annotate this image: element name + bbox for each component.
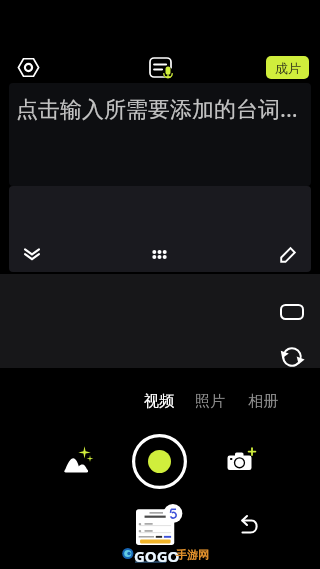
staticText: 成片 bbox=[275, 60, 301, 76]
staticText: GOGO bbox=[134, 546, 180, 566]
button[interactable]: Beauty filter bbox=[60, 443, 96, 479]
staticText: 点击输入所需要添加的台词... bbox=[16, 93, 298, 123]
button[interactable]: Add photo bbox=[224, 444, 260, 480]
button[interactable]: Gallery preview bbox=[135, 507, 181, 545]
button[interactable]: 成片 bbox=[266, 56, 309, 79]
button[interactable]: Switch camera bbox=[278, 343, 306, 371]
button[interactable]: 相册 bbox=[238, 389, 288, 413]
button[interactable]: Collapse bbox=[17, 240, 46, 269]
button[interactable] bbox=[9, 83, 311, 186]
button[interactable]: Edit script bbox=[273, 240, 302, 269]
button[interactable]: Teleprompter script bbox=[147, 54, 174, 81]
button[interactable]: Settings bbox=[13, 52, 43, 82]
staticText: 相册 bbox=[248, 392, 278, 411]
button[interactable]: 照片 bbox=[185, 389, 235, 413]
button[interactable]: 视频 bbox=[134, 389, 184, 413]
staticText: 照片 bbox=[195, 392, 225, 411]
button[interactable]: Record bbox=[131, 433, 187, 489]
staticText: 视频 bbox=[144, 392, 174, 411]
button[interactable]: Undo bbox=[236, 511, 264, 539]
staticText: 手游网 bbox=[176, 548, 209, 562]
button[interactable]: Aspect ratio bbox=[278, 298, 306, 326]
button[interactable]: More options bbox=[145, 240, 174, 269]
